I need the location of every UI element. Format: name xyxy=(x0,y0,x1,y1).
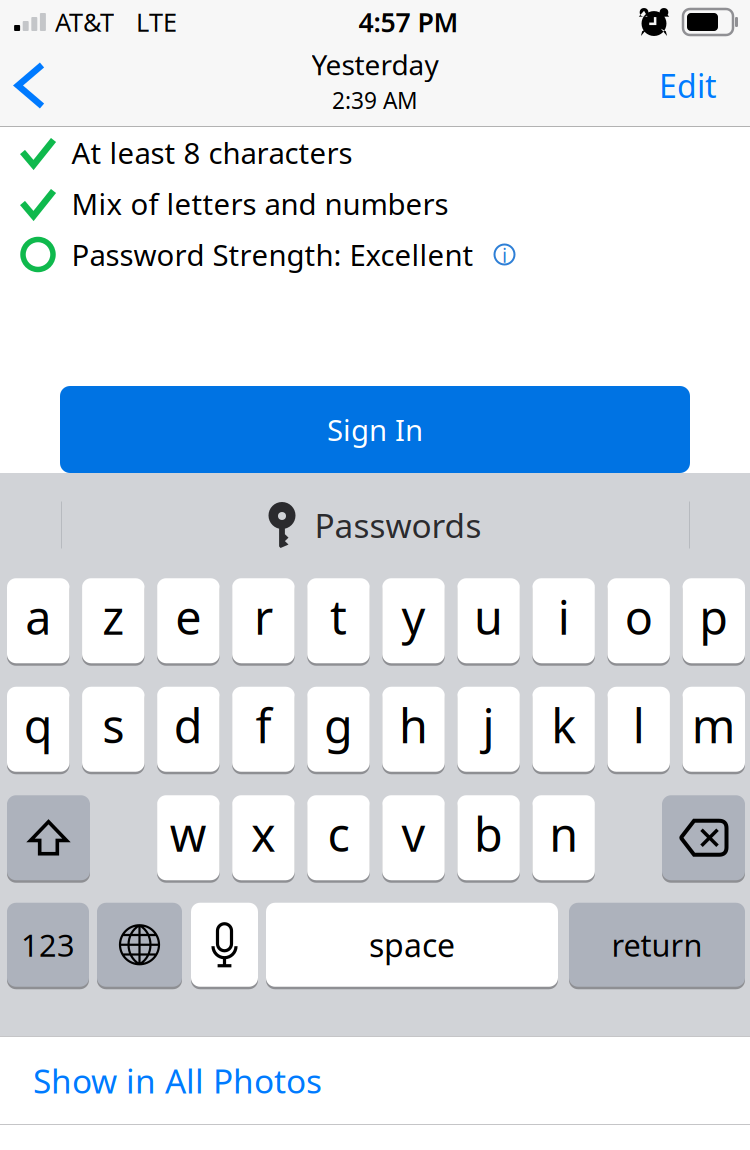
staticText: r xyxy=(254,586,273,648)
button[interactable]: Dictation xyxy=(191,901,258,988)
button[interactable]: y xyxy=(382,577,445,664)
button[interactable]: l xyxy=(607,685,670,773)
button[interactable]: b xyxy=(457,794,520,881)
staticText: Passwords xyxy=(314,503,481,547)
button[interactable]: p xyxy=(682,577,745,664)
staticText: f xyxy=(255,694,271,756)
button[interactable]: u xyxy=(457,577,520,664)
button[interactable]: j xyxy=(457,685,520,773)
button[interactable]: q xyxy=(7,685,69,773)
button[interactable]: More info about password strength xyxy=(489,239,519,269)
button[interactable]: w xyxy=(157,794,220,881)
staticText: e xyxy=(175,586,201,648)
staticText: 2:39 AM xyxy=(332,85,418,115)
button[interactable]: i xyxy=(532,577,595,664)
staticText: LTE xyxy=(136,5,177,39)
staticText: l xyxy=(633,694,645,756)
staticText: y xyxy=(401,586,425,648)
button[interactable]: d xyxy=(157,685,220,773)
staticText: z xyxy=(102,586,124,648)
button[interactable]: Back xyxy=(0,46,68,125)
staticText: q xyxy=(24,694,53,756)
staticText: return xyxy=(611,924,702,965)
button[interactable]: x xyxy=(232,794,295,881)
button[interactable]: Delete xyxy=(662,794,745,881)
button[interactable]: z xyxy=(82,577,145,664)
staticText: t xyxy=(330,586,347,648)
staticText: k xyxy=(551,694,576,756)
staticText: u xyxy=(474,586,503,648)
button[interactable]: t xyxy=(307,577,370,664)
button[interactable]: e xyxy=(157,577,220,664)
staticText: g xyxy=(324,694,353,756)
button[interactable]: Sign In xyxy=(60,386,690,473)
staticText: space xyxy=(369,923,455,966)
staticText: Mix of letters and numbers xyxy=(71,184,448,223)
staticText: 4:57 PM xyxy=(358,4,458,40)
button[interactable]: f xyxy=(232,685,295,773)
staticText: Sign In xyxy=(327,410,423,449)
staticText: j xyxy=(483,694,495,756)
staticText: a xyxy=(25,586,51,648)
staticText: b xyxy=(474,803,503,865)
button[interactable]: Passwords xyxy=(268,495,481,555)
button[interactable]: Shift xyxy=(7,794,90,881)
button[interactable]: n xyxy=(532,794,595,881)
staticText: o xyxy=(625,586,653,648)
button[interactable]: m xyxy=(682,685,745,773)
staticText: x xyxy=(251,803,276,865)
button[interactable]: Next keyboard xyxy=(97,901,182,988)
button[interactable]: h xyxy=(382,685,445,773)
button[interactable]: v xyxy=(382,794,445,881)
staticText: v xyxy=(401,803,425,865)
button[interactable]: r xyxy=(232,577,295,664)
button[interactable]: return xyxy=(569,901,745,988)
button[interactable]: Show in All Photos xyxy=(0,1037,750,1124)
button[interactable]: Edit xyxy=(633,46,750,125)
staticText: Show in All Photos xyxy=(33,1058,322,1103)
staticText: Edit xyxy=(659,64,717,107)
staticText: w xyxy=(170,803,207,865)
staticText: i xyxy=(502,242,507,268)
staticText: m xyxy=(692,694,736,756)
staticText: i xyxy=(558,586,570,648)
staticText: Password Strength: Excellent xyxy=(71,235,473,274)
button[interactable]: g xyxy=(307,685,370,773)
staticText: p xyxy=(699,586,728,648)
staticText: Yesterday xyxy=(311,46,438,83)
staticText: s xyxy=(102,694,124,756)
staticText: n xyxy=(549,803,578,865)
staticText: AT&T xyxy=(55,5,114,39)
button[interactable]: o xyxy=(607,577,670,664)
staticText: 123 xyxy=(21,924,75,965)
button[interactable]: 123 xyxy=(7,901,89,988)
button[interactable]: a xyxy=(7,577,69,664)
button[interactable]: k xyxy=(532,685,595,773)
staticText: c xyxy=(327,803,349,865)
button[interactable]: c xyxy=(307,794,370,881)
staticText: At least 8 characters xyxy=(71,133,352,172)
button[interactable]: space xyxy=(266,901,558,988)
staticText: h xyxy=(399,694,428,756)
button[interactable]: s xyxy=(82,685,145,773)
staticText: d xyxy=(174,694,203,756)
